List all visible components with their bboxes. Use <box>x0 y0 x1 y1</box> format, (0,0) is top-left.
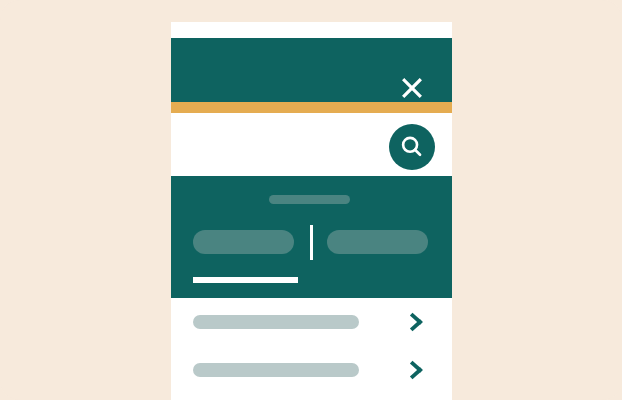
button[interactable]: Search <box>389 124 435 170</box>
button[interactable]: Option two <box>327 230 428 254</box>
button[interactable]: List item <box>171 346 452 394</box>
button[interactable]: List item <box>171 298 452 346</box>
button[interactable]: Option one <box>193 230 294 254</box>
button[interactable]: Close <box>388 64 436 112</box>
